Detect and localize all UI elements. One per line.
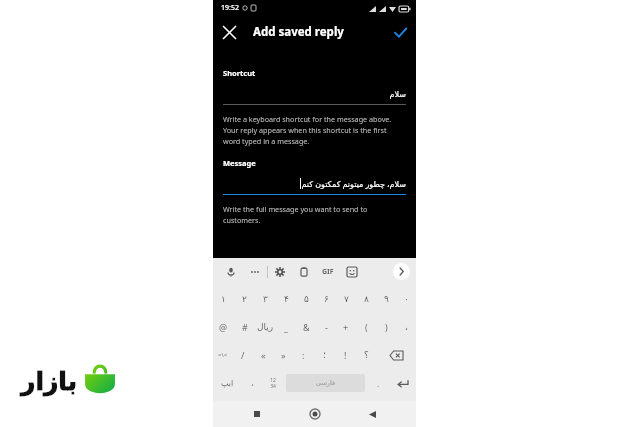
button[interactable]: Expand toolbar xyxy=(393,263,410,280)
staticText: - xyxy=(325,321,328,333)
staticText: + xyxy=(343,321,349,333)
button[interactable]: ۸ xyxy=(356,285,376,313)
staticText: ، xyxy=(251,379,254,388)
staticText: ابپ xyxy=(221,379,234,388)
button[interactable]: : xyxy=(293,341,314,369)
button[interactable]: ۷ xyxy=(336,285,356,313)
staticText: GIF xyxy=(322,267,334,277)
button[interactable]: Bazaar xyxy=(10,353,128,409)
staticText: 19:52 xyxy=(221,3,239,13)
button[interactable]: ، xyxy=(242,369,263,397)
staticText: Write a keyboard shortcut for the messag… xyxy=(223,114,392,146)
button[interactable]: - xyxy=(316,313,336,341)
staticText: ۳ xyxy=(263,294,268,304)
button[interactable]: ریال xyxy=(255,313,276,341)
staticText: ! xyxy=(344,349,347,361)
button[interactable]: Home xyxy=(302,401,328,427)
button[interactable]: # xyxy=(234,313,255,341)
button[interactable]: ۱ xyxy=(213,285,234,313)
button[interactable]: ؟ xyxy=(356,341,377,369)
staticText: ریال xyxy=(257,322,274,332)
staticText: ۰ xyxy=(404,294,409,304)
button[interactable]: Clipboard xyxy=(292,260,316,284)
button[interactable]: سلام xyxy=(223,90,406,99)
staticText: ۱ xyxy=(221,294,226,304)
button[interactable]: Back xyxy=(359,401,385,427)
button[interactable]: « xyxy=(253,341,273,369)
button[interactable]: ۶ xyxy=(316,285,336,313)
staticText: =\< xyxy=(218,351,228,359)
button[interactable]: ۹ xyxy=(376,285,396,313)
button[interactable]: فارسی xyxy=(286,374,365,392)
button[interactable]: ۴ xyxy=(276,285,296,313)
staticText: Write the full message you want to send … xyxy=(223,204,368,225)
button[interactable]: Close xyxy=(213,16,245,48)
staticText: Add saved reply xyxy=(253,24,344,40)
staticText: ۲ xyxy=(242,294,247,304)
staticText: ۵ xyxy=(304,294,309,304)
button[interactable]: ؛ xyxy=(314,341,335,369)
staticText: Message xyxy=(223,158,256,168)
button[interactable]: ) xyxy=(376,313,396,341)
button[interactable]: ( xyxy=(356,313,376,341)
staticText: » xyxy=(281,349,286,361)
button[interactable]: Recents xyxy=(244,401,270,427)
staticText: ۸ xyxy=(364,294,369,304)
staticText: / xyxy=(241,349,245,361)
staticText: سلام xyxy=(389,90,406,99)
button[interactable]: ۰ xyxy=(396,285,416,313)
button[interactable]: & xyxy=(296,313,316,341)
button[interactable]: Enter xyxy=(388,369,416,397)
staticText: ۹ xyxy=(384,294,389,304)
staticText: ۶ xyxy=(324,294,329,304)
button[interactable]: ۵ xyxy=(296,285,316,313)
button[interactable]: Backspace xyxy=(377,341,416,369)
staticText: « xyxy=(261,349,266,361)
staticText: ( xyxy=(365,321,368,333)
staticText: & xyxy=(303,321,310,333)
staticText: ) xyxy=(385,321,388,333)
button[interactable]: سلام، چطور میتونم کمکتون کنم xyxy=(223,178,406,189)
staticText: . xyxy=(377,378,380,389)
button[interactable]: / xyxy=(233,341,253,369)
button[interactable]: Voice input xyxy=(219,260,243,284)
button[interactable]: ابپ xyxy=(213,369,242,397)
button[interactable]: More options xyxy=(243,260,267,284)
button[interactable]: GIF xyxy=(316,267,340,277)
staticText: ۷ xyxy=(344,294,349,304)
button[interactable]: Save xyxy=(384,16,416,48)
button[interactable]: ۳ xyxy=(255,285,276,313)
button[interactable]: Emoji xyxy=(340,260,364,284)
staticText: ؟ xyxy=(364,350,369,360)
staticText: ، xyxy=(405,322,408,332)
button[interactable]: ! xyxy=(335,341,356,369)
staticText: ؛ xyxy=(323,350,326,360)
staticText: 12 34 xyxy=(270,377,276,390)
button[interactable]: =\< xyxy=(213,341,233,369)
button[interactable]: » xyxy=(273,341,293,369)
button[interactable]: + xyxy=(336,313,356,341)
staticText: _ xyxy=(284,321,288,333)
button[interactable]: _ xyxy=(276,313,296,341)
staticText: بازار xyxy=(21,367,78,396)
button[interactable]: ، xyxy=(396,313,416,341)
staticText: # xyxy=(242,321,248,333)
button[interactable]: @ xyxy=(213,313,234,341)
staticText: فارسی xyxy=(316,379,336,387)
button[interactable]: Numbers xyxy=(263,369,283,397)
staticText: Shortcut xyxy=(223,68,256,78)
staticText: سلام، چطور میتونم کمکتون کنم xyxy=(301,178,406,189)
button[interactable]: ۲ xyxy=(234,285,255,313)
staticText: : xyxy=(302,349,305,361)
staticText: @ xyxy=(219,321,228,333)
button[interactable]: Settings xyxy=(268,260,292,284)
staticText: ۴ xyxy=(284,294,289,304)
